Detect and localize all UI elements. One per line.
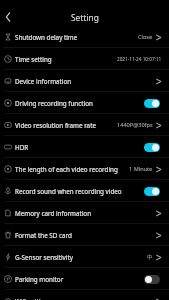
- staticText: 1440P@30fps: [117, 121, 153, 129]
- button[interactable]: Toggle on: [144, 99, 160, 108]
- button[interactable]: Format the SD card: [0, 224, 169, 246]
- staticText: 中: [147, 254, 153, 261]
- staticText: Time setting: [15, 55, 52, 64]
- staticText: Driving recording function: [15, 99, 93, 108]
- button[interactable]: HDR: [0, 136, 169, 158]
- staticText: Record sound when recording video: [15, 187, 122, 196]
- staticText: Close: [138, 33, 153, 41]
- button[interactable]: Device information: [0, 70, 169, 92]
- staticText: 2021-11-24 10:07:11: [117, 56, 162, 62]
- staticText: Setting: [71, 12, 99, 23]
- button[interactable]: Driving recording function: [0, 92, 169, 114]
- staticText: G-Sensor sensitivity: [15, 253, 73, 262]
- button[interactable]: Record sound when recording video: [0, 180, 169, 202]
- staticText: Device information: [15, 77, 72, 86]
- button[interactable]: Toggle off: [144, 275, 160, 284]
- staticText: Wifi setting: [15, 297, 49, 300]
- button[interactable]: Back: [0, 8, 16, 26]
- button[interactable]: G-Sensor sensitivity: [0, 246, 169, 268]
- button[interactable]: The length of each video recording: [0, 158, 169, 180]
- staticText: Video resolution frame rate: [15, 121, 96, 130]
- button[interactable]: Time setting: [0, 48, 169, 70]
- staticText: Parking monitor: [15, 275, 64, 284]
- staticText: Format the SD card: [15, 231, 72, 240]
- button[interactable]: Toggle on: [144, 143, 160, 152]
- staticText: Shutdown delay time: [15, 33, 78, 42]
- button[interactable]: Wifi setting: [0, 290, 169, 300]
- button[interactable]: Video resolution frame rate: [0, 114, 169, 136]
- staticText: Memory card information: [15, 209, 92, 218]
- button[interactable]: Toggle on: [144, 187, 160, 196]
- button[interactable]: Parking monitor: [0, 268, 169, 290]
- button[interactable]: Memory card information: [0, 202, 169, 224]
- button[interactable]: Shutdown delay time: [0, 26, 169, 48]
- staticText: HDR: [15, 143, 29, 152]
- staticText: 1 Minute: [129, 165, 153, 173]
- staticText: The length of each video recording: [15, 165, 118, 174]
